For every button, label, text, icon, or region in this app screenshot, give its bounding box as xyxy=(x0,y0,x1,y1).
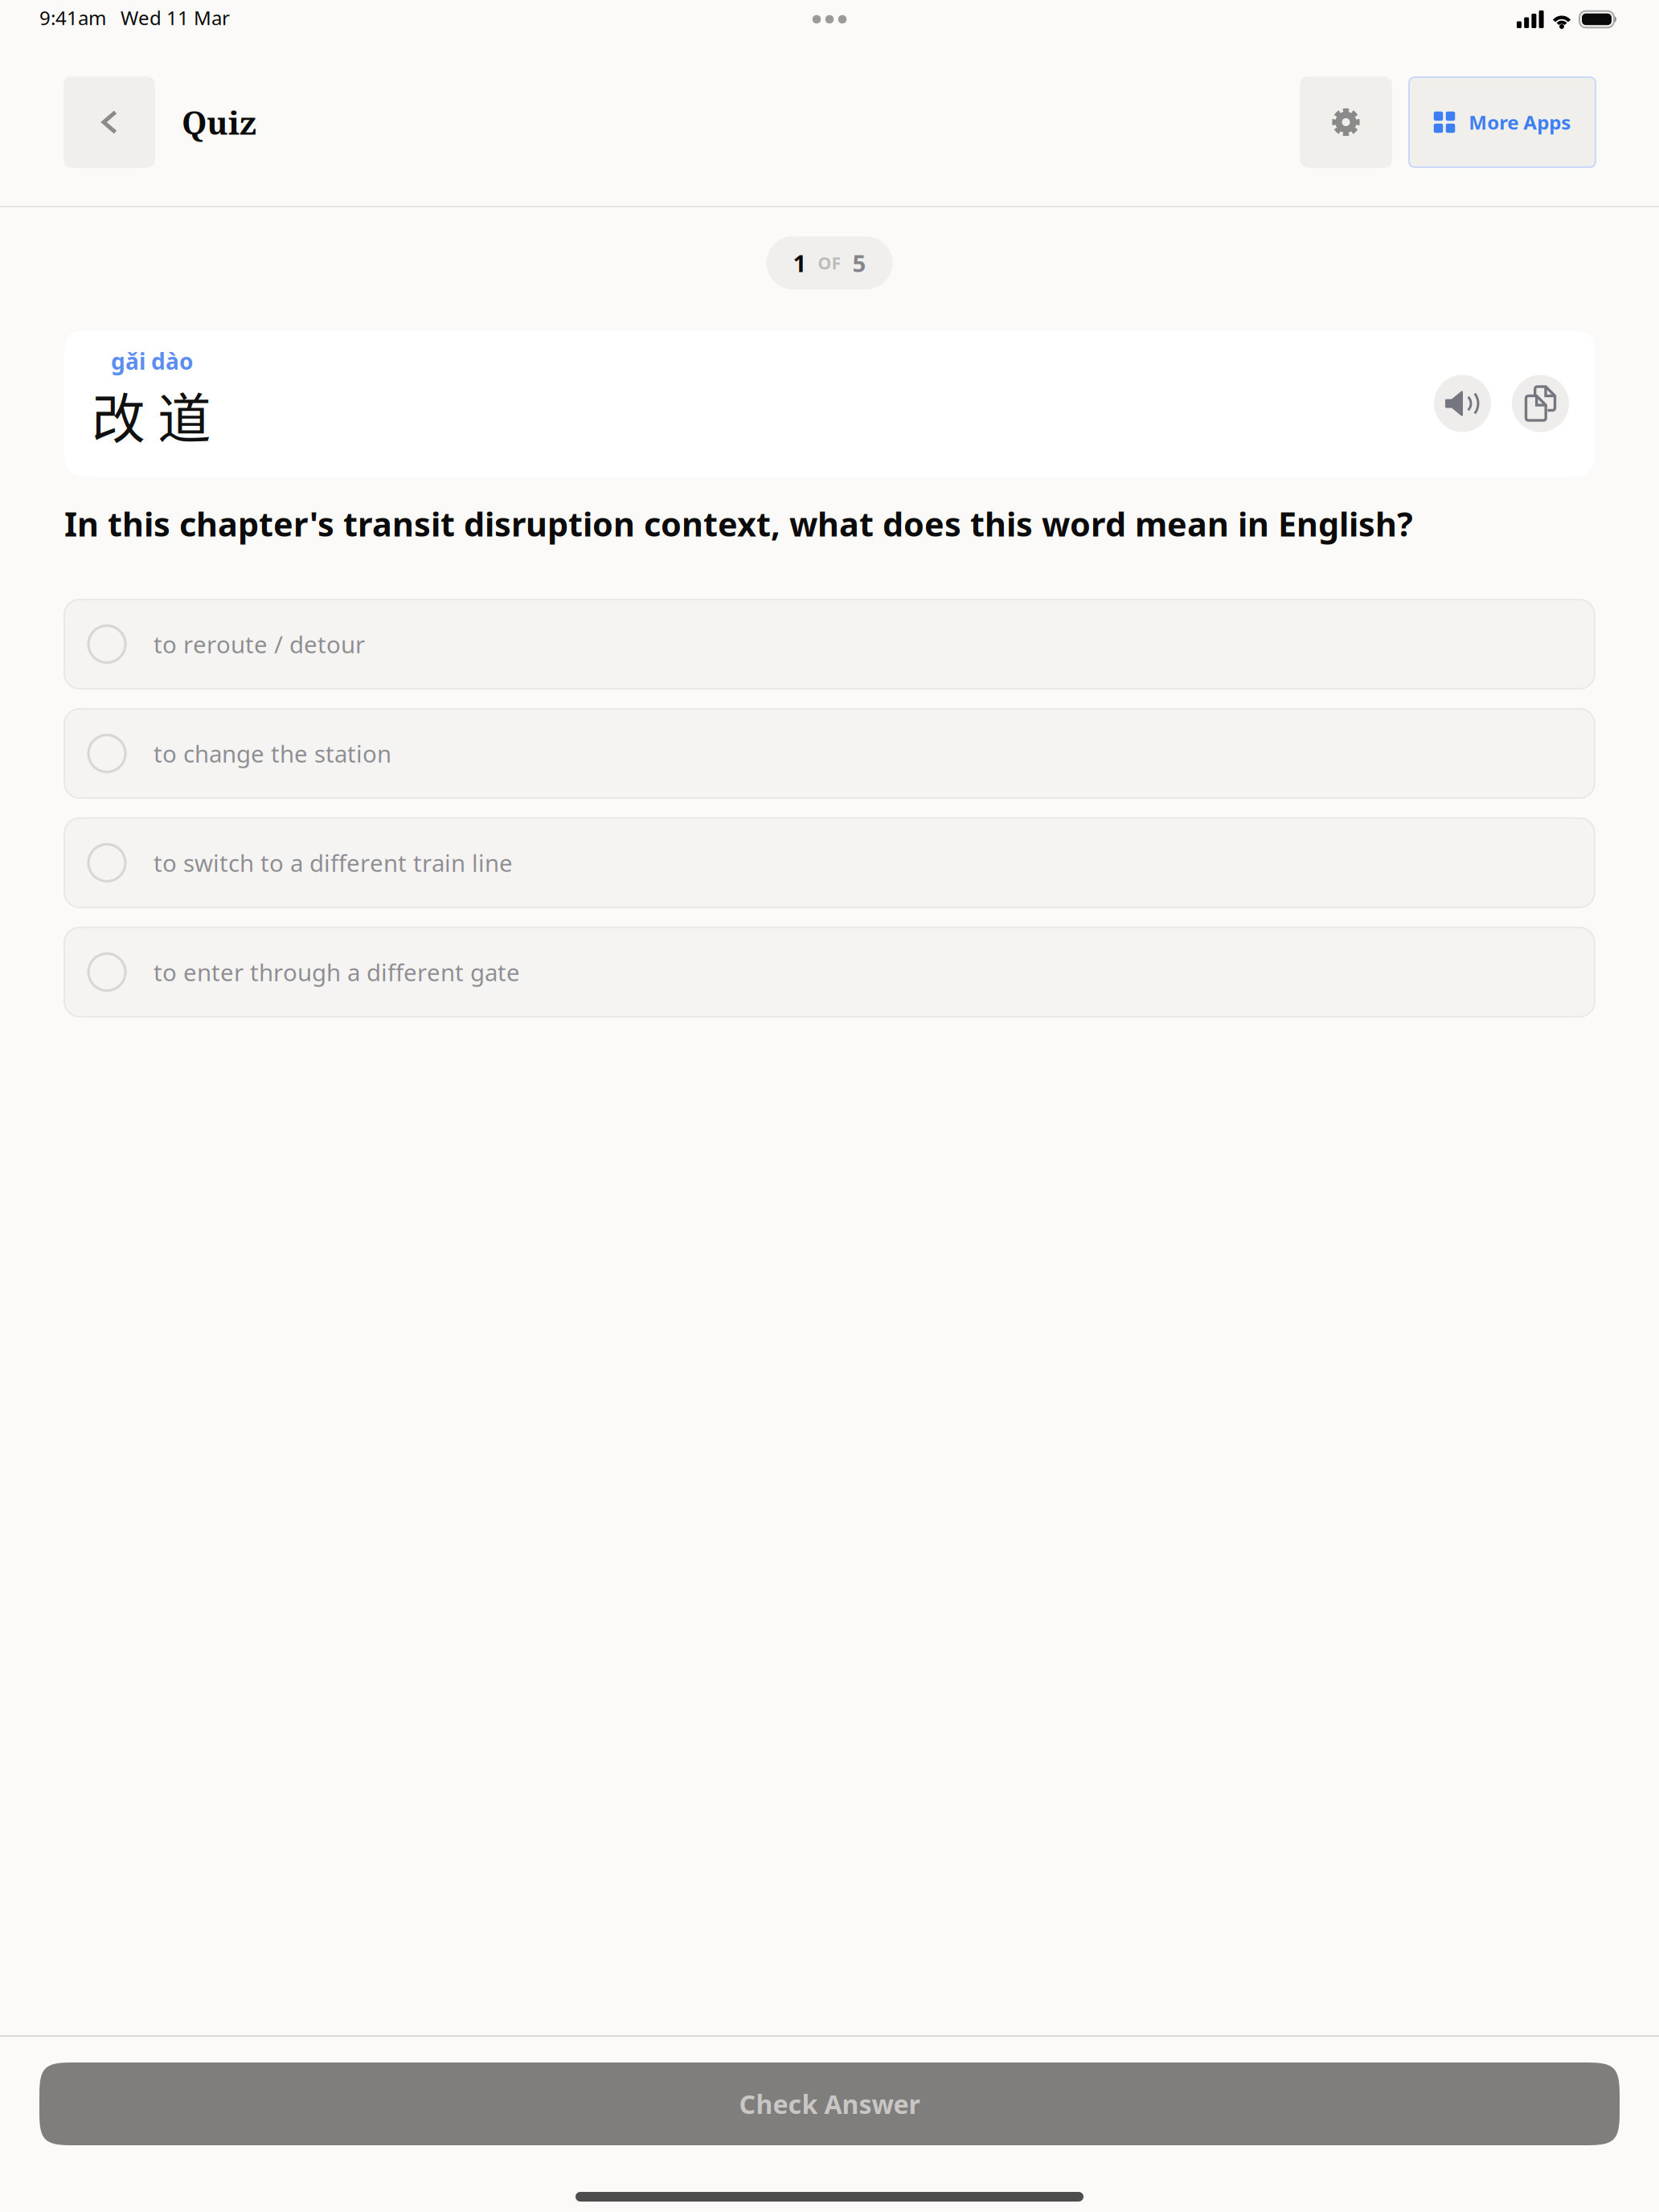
staticText: 改 道 xyxy=(92,376,211,454)
button[interactable]: Play pronunciation xyxy=(1434,375,1491,432)
button[interactable]: to reroute / detour xyxy=(64,600,1595,689)
button[interactable]: Check Answer xyxy=(39,2062,1620,2145)
button[interactable]: to switch to a different train line xyxy=(64,818,1595,907)
button[interactable]: More Apps xyxy=(1392,77,1596,167)
staticText: to change the station xyxy=(154,738,391,769)
button[interactable]: Copy word xyxy=(1491,375,1569,432)
staticText: Quiz xyxy=(182,100,256,144)
staticText: 9:41am Wed 11 Mar xyxy=(39,5,230,31)
staticText: Check Answer xyxy=(739,2087,920,2121)
staticText: 5 xyxy=(852,247,866,279)
staticText: 1 xyxy=(793,247,807,279)
staticText: gǎi dào xyxy=(111,346,194,376)
staticText: to reroute / detour xyxy=(154,628,365,660)
button[interactable]: Back xyxy=(63,76,155,168)
button[interactable]: to enter through a different gate xyxy=(64,927,1595,1017)
staticText: OF xyxy=(818,251,841,274)
staticText: to switch to a different train line xyxy=(154,847,513,878)
button[interactable]: to change the station xyxy=(64,709,1595,798)
staticText: In this chapter's transit disruption con… xyxy=(64,502,1413,546)
staticText: More Apps xyxy=(1469,109,1571,135)
button[interactable]: Settings xyxy=(1300,76,1392,168)
staticText: to enter through a different gate xyxy=(154,956,520,988)
